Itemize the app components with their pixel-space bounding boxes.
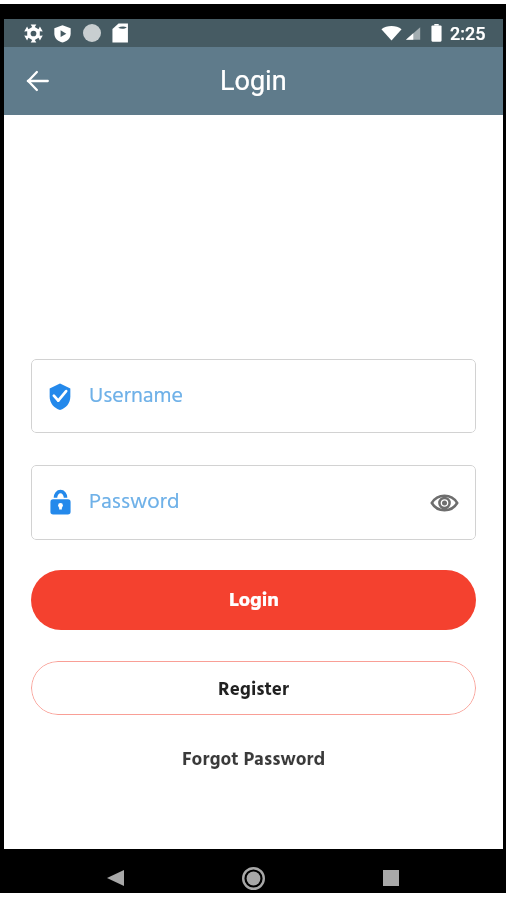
staticText: Register [218, 675, 289, 705]
staticText: Forgot Password [182, 745, 326, 775]
button[interactable]: Username [31, 359, 476, 433]
button[interactable]: Forgot Password [176, 737, 332, 779]
staticText: Login [229, 585, 279, 617]
button[interactable]: Login [31, 570, 476, 630]
staticText: 2:25 [450, 23, 486, 44]
button[interactable]: Password [31, 465, 476, 540]
staticText: Username [89, 379, 184, 414]
staticText: Password [89, 485, 180, 520]
button[interactable]: Recent apps [371, 858, 411, 898]
button[interactable]: Home [233, 858, 273, 898]
button[interactable]: Register [31, 661, 476, 715]
staticText: Login [220, 65, 287, 97]
button[interactable]: Back [13, 57, 61, 105]
button[interactable]: Back [95, 858, 135, 898]
button[interactable]: Show password [428, 487, 460, 519]
